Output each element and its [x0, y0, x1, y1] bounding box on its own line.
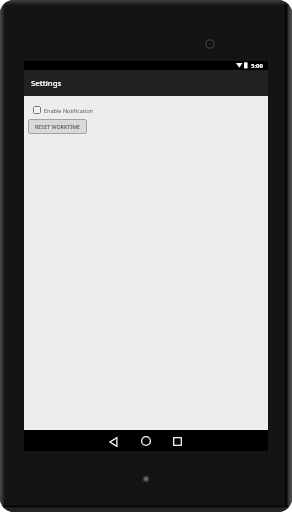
button[interactable]	[169, 436, 186, 446]
button[interactable]: Enable Notification	[33, 106, 93, 114]
staticText: RESET WORKTIME	[35, 123, 80, 130]
staticText: Enable Notification	[44, 107, 93, 114]
button[interactable]: RESET WORKTIME	[28, 119, 87, 134]
button[interactable]	[137, 436, 154, 446]
staticText: 5:00	[251, 62, 263, 70]
button[interactable]	[105, 437, 121, 446]
staticText: Settings	[31, 78, 62, 89]
